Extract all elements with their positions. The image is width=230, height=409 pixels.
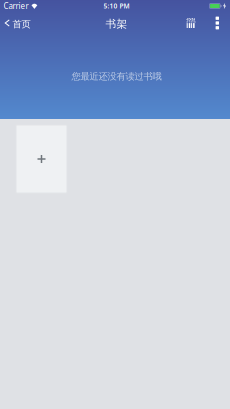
staticText: 首页 xyxy=(12,18,30,30)
button[interactable]: More options xyxy=(206,12,230,34)
button[interactable]: 首页 xyxy=(0,12,36,34)
button[interactable]: Add a book xyxy=(16,125,67,193)
button[interactable]: Scan xyxy=(181,12,206,34)
staticText: 5:10 PM xyxy=(103,2,129,10)
staticText: 书架 xyxy=(105,17,127,30)
staticText: 您最近还没有读过书哦 xyxy=(71,71,161,82)
staticText: Carrier xyxy=(3,1,28,11)
